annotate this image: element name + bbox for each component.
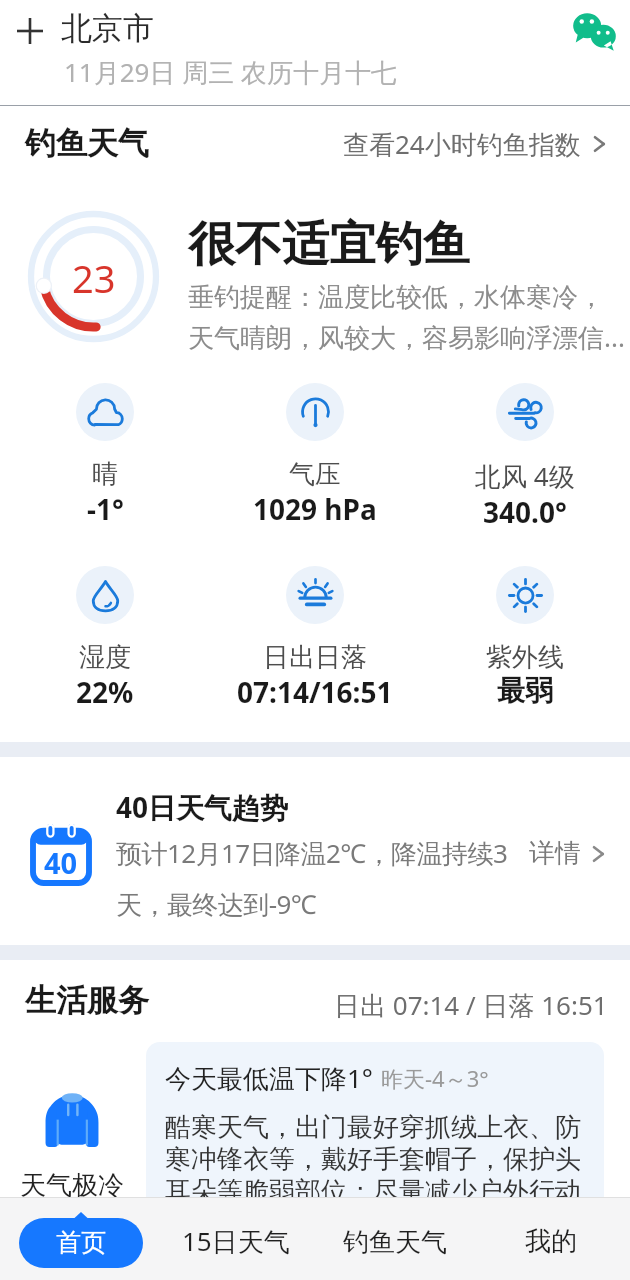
staticText: 预计12月17日降温2℃，降温持续3 天，最终达到-9℃ <box>116 835 508 922</box>
button[interactable] <box>0 757 630 945</box>
button[interactable]: 日出日落 <box>210 566 420 712</box>
staticText: 日出日落 <box>263 641 367 674</box>
staticText: 紫外线 <box>486 641 564 674</box>
staticText: 1029 hPa <box>253 490 377 528</box>
button[interactable]: 今天最低温下降1° <box>146 1042 604 1242</box>
staticText: 气压 <box>289 458 341 491</box>
button[interactable]: 气压 <box>210 383 420 529</box>
staticText: -1° <box>87 490 124 528</box>
button[interactable]: 钓鱼天气 <box>322 1216 467 1268</box>
staticText: 40 <box>44 843 78 882</box>
staticText: 我的 <box>525 1225 577 1258</box>
button[interactable]: 我的 <box>478 1215 623 1267</box>
button[interactable]: 天气极冷 <box>12 1090 132 1202</box>
staticText: 天气极冷 <box>20 1169 124 1202</box>
button[interactable]: 紫外线 <box>420 566 630 709</box>
staticText: 日出 07:14 / 日落 16:51 <box>334 987 608 1023</box>
button[interactable]: 查看24小时钓鱼指数 <box>343 121 609 167</box>
staticText: 最弱 <box>497 673 553 708</box>
staticText: 垂钓提醒：温度比较低，水体寒冷， 天气晴朗，风较大，容易影响浮漂信... <box>188 281 625 355</box>
staticText: 很不适宜钓鱼 <box>188 215 470 274</box>
staticText: 钓鱼天气 <box>25 124 149 163</box>
staticText: 11月29日 周三 农历十月十七 <box>64 54 398 90</box>
staticText: 今天最低温下降1° <box>165 1060 374 1096</box>
button[interactable]: 晴 <box>0 383 210 529</box>
staticText: 北风 4级 <box>475 458 575 494</box>
button[interactable]: WeChat <box>569 6 621 58</box>
staticText: 23 <box>72 252 116 304</box>
button[interactable]: 湿度 <box>0 566 210 712</box>
staticText: 北京市 <box>61 9 154 48</box>
staticText: 首页 <box>56 1227 106 1258</box>
staticText: 15日天气 <box>182 1223 290 1259</box>
staticText: 昨天-4～3° <box>381 1063 489 1093</box>
button[interactable]: 15日天气 <box>163 1215 308 1267</box>
staticText: 酷寒天气，出门最好穿抓绒上衣、防 寒冲锋衣等，戴好手套帽子，保护头 耳朵等脆弱部… <box>165 1111 581 1208</box>
staticText: 40日天气趋势 <box>116 788 289 826</box>
staticText: 生活服务 <box>25 981 149 1020</box>
staticText: 湿度 <box>79 641 131 674</box>
staticText: 详情 <box>529 837 581 870</box>
staticText: 钓鱼天气 <box>343 1226 447 1259</box>
button[interactable]: 北风 4级 <box>420 383 630 532</box>
staticText: 22% <box>76 673 134 711</box>
staticText: 晴 <box>92 458 118 491</box>
staticText: 07:14/16:51 <box>237 673 393 711</box>
staticText: 查看24小时钓鱼指数 <box>343 126 581 162</box>
staticText: 340.0° <box>483 493 567 531</box>
button[interactable]: Add city <box>17 18 43 44</box>
button[interactable]: 首页 <box>19 1218 143 1268</box>
